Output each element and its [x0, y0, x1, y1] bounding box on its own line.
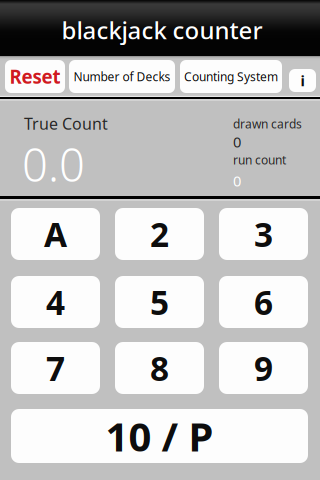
- staticText: Number of Decks: [73, 68, 170, 84]
- button[interactable]: 7: [11, 342, 100, 394]
- staticText: 3: [254, 212, 273, 256]
- staticText: 0: [233, 171, 241, 190]
- button[interactable]: 3: [219, 208, 308, 260]
- button[interactable]: 6: [219, 276, 308, 328]
- staticText: 8: [150, 346, 169, 390]
- staticText: run count: [233, 152, 286, 168]
- staticText: 0.0: [22, 134, 85, 194]
- staticText: drawn cards: [233, 116, 302, 132]
- staticText: 5: [150, 280, 169, 324]
- button[interactable]: Counting System: [180, 60, 282, 93]
- staticText: 9: [254, 346, 273, 390]
- staticText: 2: [150, 212, 169, 256]
- button[interactable]: 10 / P: [11, 409, 308, 463]
- button[interactable]: i: [289, 69, 316, 92]
- button[interactable]: 8: [115, 342, 204, 394]
- staticText: 10 / P: [105, 409, 213, 462]
- button[interactable]: A: [11, 208, 100, 260]
- button[interactable]: Reset: [5, 60, 65, 93]
- staticText: True Count: [24, 113, 108, 134]
- staticText: 4: [46, 280, 65, 324]
- staticText: 0: [233, 132, 241, 151]
- button[interactable]: Number of Decks: [69, 60, 175, 93]
- staticText: blackjack counter: [61, 14, 262, 46]
- button[interactable]: 2: [115, 208, 204, 260]
- staticText: 6: [254, 280, 273, 324]
- staticText: A: [44, 212, 67, 256]
- button[interactable]: 4: [11, 276, 100, 328]
- staticText: Reset: [9, 64, 60, 89]
- staticText: Counting System: [184, 68, 278, 84]
- button[interactable]: 5: [115, 276, 204, 328]
- button[interactable]: 9: [219, 342, 308, 394]
- staticText: 7: [46, 346, 65, 390]
- staticText: i: [300, 71, 304, 90]
